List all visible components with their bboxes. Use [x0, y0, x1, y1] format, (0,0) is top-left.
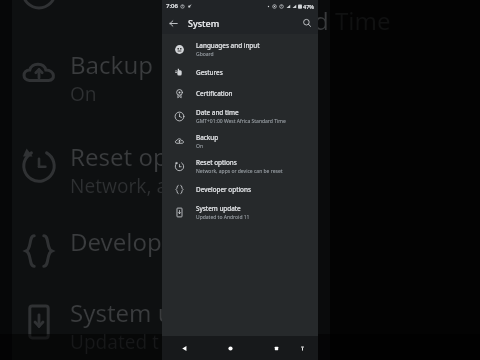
staticText: System	[188, 17, 220, 29]
button[interactable]: System update	[162, 200, 318, 225]
staticText: Updated t	[70, 329, 159, 355]
staticText: Gestures	[196, 68, 223, 77]
button[interactable]: Back	[172, 336, 196, 360]
button[interactable]: Home	[218, 336, 242, 360]
staticText: 7:06	[166, 2, 178, 10]
button[interactable]: Certification	[162, 83, 318, 104]
staticText: Network, a	[70, 173, 168, 199]
staticText: System u	[70, 296, 173, 329]
staticText: Certification	[196, 89, 233, 98]
button[interactable]: Search settings	[296, 12, 318, 34]
staticText: Updated to Android 11	[196, 214, 250, 221]
staticText: On	[196, 143, 203, 150]
button[interactable]: Date and time	[162, 104, 318, 129]
button[interactable]: Developer options	[162, 179, 318, 200]
button[interactable]: Hide keyboard	[292, 338, 312, 358]
button[interactable]: Backup	[162, 129, 318, 154]
staticText: d Time	[314, 4, 391, 37]
button[interactable]: Gestures	[162, 62, 318, 83]
staticText: GMT+01:00 West Africa Standard Time	[196, 118, 286, 125]
staticText: System update	[196, 204, 241, 213]
staticText: Reset opt	[70, 140, 177, 173]
button[interactable]: Languages and input	[162, 37, 318, 62]
staticText: Backup	[70, 48, 153, 81]
staticText: Develope	[70, 225, 176, 258]
staticText: Reset options	[196, 158, 237, 167]
staticText: Network, apps or device can be reset	[196, 168, 283, 175]
staticText: On	[70, 81, 97, 107]
staticText: Date and time	[196, 108, 239, 117]
staticText: Gboard	[196, 51, 214, 58]
staticText: 47%	[303, 3, 314, 10]
button[interactable]: Navigate up	[162, 12, 184, 34]
staticText: Backup	[196, 133, 219, 142]
button[interactable]: Recent apps	[264, 336, 288, 360]
staticText: Developer options	[196, 185, 251, 194]
button[interactable]: Reset options	[162, 154, 318, 179]
staticText: Languages and input	[196, 41, 260, 50]
